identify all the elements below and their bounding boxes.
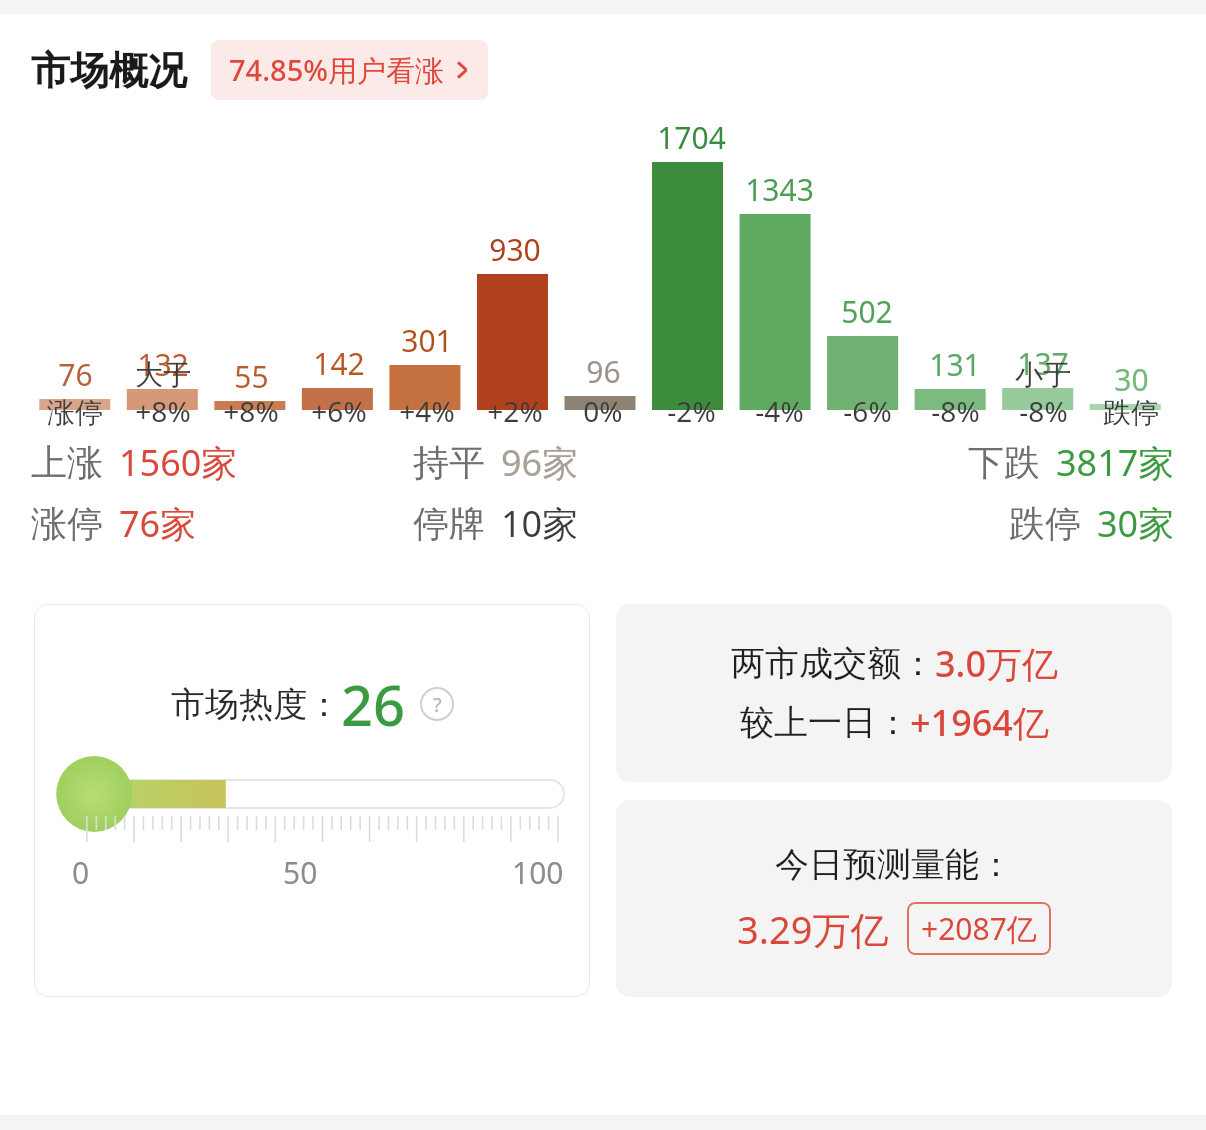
- button[interactable]: 74.85%用户看涨: [211, 40, 488, 100]
- staticText: ?: [433, 691, 442, 718]
- staticText: 30家: [1097, 499, 1175, 548]
- button[interactable]: 说明: [420, 687, 454, 721]
- staticText: 10家: [501, 499, 579, 548]
- staticText: +8%: [135, 392, 191, 430]
- staticText: 55: [234, 356, 269, 397]
- staticText: 502: [841, 291, 893, 332]
- staticText: 市场概况: [31, 46, 187, 95]
- staticText: 3.0万亿: [935, 639, 1058, 688]
- staticText: 小于: [1015, 357, 1071, 392]
- staticText: 1704: [657, 117, 726, 158]
- staticText: -4%: [755, 392, 804, 430]
- staticText: +4%: [399, 392, 455, 430]
- staticText: 涨停: [47, 395, 103, 430]
- staticText: 137: [1017, 343, 1069, 384]
- button[interactable]: 两市成交额：: [616, 604, 1172, 782]
- staticText: 930: [489, 229, 541, 270]
- staticText: 30: [1114, 359, 1149, 400]
- staticText: 持平: [413, 440, 485, 485]
- staticText: 74.85%用户看涨: [229, 50, 444, 90]
- staticText: 0%: [583, 392, 623, 430]
- staticText: 跌停: [1103, 395, 1159, 430]
- staticText: 今日预测量能：: [775, 843, 1013, 886]
- staticText: 下跌: [968, 440, 1040, 485]
- staticText: 涨停: [31, 501, 103, 546]
- staticText: 100: [512, 852, 564, 893]
- staticText: 3.29万亿: [737, 903, 889, 955]
- staticText: 96家: [501, 438, 579, 487]
- staticText: +2087亿: [921, 908, 1037, 949]
- staticText: 50: [283, 852, 318, 893]
- staticText: 0: [72, 852, 90, 893]
- button[interactable]: 今日预测量能：: [616, 800, 1172, 997]
- staticText: 76: [58, 354, 93, 395]
- staticText: 76家: [119, 499, 197, 548]
- staticText: 市场热度：: [171, 683, 341, 726]
- staticText: +8%: [223, 392, 279, 430]
- staticText: 1560家: [119, 438, 238, 487]
- staticText: -6%: [843, 392, 892, 430]
- staticText: 132: [137, 344, 189, 385]
- staticText: 142: [313, 343, 365, 384]
- staticText: 26: [341, 666, 406, 742]
- staticText: +1964亿: [910, 698, 1049, 747]
- staticText: -2%: [667, 392, 716, 430]
- staticText: 1343: [745, 169, 814, 210]
- staticText: 301: [401, 320, 453, 361]
- staticText: 两市成交额：: [731, 642, 935, 685]
- staticText: +2%: [487, 392, 543, 430]
- staticText: +6%: [311, 392, 367, 430]
- staticText: 停牌: [413, 501, 485, 546]
- staticText: 131: [929, 344, 981, 385]
- staticText: 3817家: [1056, 438, 1175, 487]
- button[interactable]: 市场热度：: [34, 604, 590, 997]
- staticText: -8%: [931, 392, 980, 430]
- staticText: -8%: [1019, 392, 1068, 430]
- staticText: 跌停: [1009, 501, 1081, 546]
- staticText: 96: [586, 351, 621, 392]
- staticText: 大于: [135, 357, 191, 392]
- staticText: 上涨: [31, 440, 103, 485]
- staticText: 较上一日：: [740, 701, 910, 744]
